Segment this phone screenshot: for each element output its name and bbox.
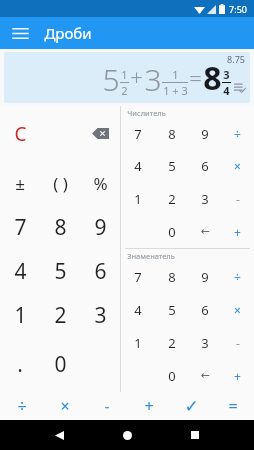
staticText: + — [130, 62, 143, 92]
button[interactable]: 6 — [80, 249, 120, 293]
staticText: 1 — [14, 301, 27, 330]
button[interactable]: 4 — [121, 293, 155, 326]
button[interactable]: Operator ÷ — [221, 261, 254, 293]
staticText: C — [14, 121, 27, 147]
staticText: ÷ — [17, 395, 27, 417]
staticText: 5 — [168, 157, 176, 175]
staticText: 1 — [134, 334, 142, 352]
staticText: 8 — [54, 213, 67, 242]
button[interactable]: ± — [0, 161, 40, 205]
button[interactable]: 8.75 — [4, 52, 250, 103]
button[interactable]: 3 — [80, 293, 120, 337]
button[interactable]: Backspace — [188, 359, 221, 392]
button[interactable]: 0 — [155, 215, 188, 248]
button[interactable]: Home — [116, 424, 138, 446]
button[interactable]: 9 — [80, 205, 120, 249]
button[interactable]: 1 — [121, 326, 155, 359]
staticText: × — [60, 395, 70, 417]
button[interactable]: 0 — [155, 359, 188, 392]
staticText: 3 — [144, 59, 162, 100]
button[interactable]: Open navigation menu — [8, 21, 32, 45]
button[interactable]: 3 — [188, 326, 221, 359]
button[interactable]: ( ) — [40, 161, 80, 205]
staticText: 8 — [203, 56, 222, 100]
button[interactable]: % — [80, 161, 120, 205]
button[interactable]: 4 — [121, 150, 155, 182]
button[interactable]: 1 — [0, 293, 40, 337]
staticText: 4 — [223, 83, 230, 98]
button[interactable]: 0 — [40, 337, 80, 392]
staticText: 9 — [94, 213, 107, 242]
staticText: % — [93, 172, 108, 195]
staticText: 4 — [14, 257, 27, 286]
staticText: - — [236, 335, 240, 351]
staticText: 8.75 — [227, 53, 245, 65]
button[interactable]: Recent apps — [184, 424, 206, 446]
staticText: 6 — [201, 301, 209, 319]
button[interactable]: 9 — [188, 118, 221, 150]
staticText: ± — [15, 172, 25, 195]
staticText: × — [234, 158, 241, 174]
staticText: + — [234, 368, 241, 384]
button[interactable]: Operator × — [221, 150, 254, 182]
button[interactable]: 5 — [40, 249, 80, 293]
button[interactable]: Operator - — [86, 392, 128, 420]
button[interactable]: 7 — [0, 205, 40, 249]
button[interactable]: Operator + — [128, 392, 170, 420]
staticText: ÷ — [234, 126, 241, 142]
button[interactable]: 8 — [40, 205, 80, 249]
staticText: - — [236, 191, 240, 207]
staticText: 1 — [121, 67, 128, 82]
staticText: + — [144, 395, 154, 417]
staticText: 9 — [201, 125, 209, 143]
staticText: 5 — [102, 59, 120, 100]
button[interactable]: Operator - — [221, 182, 254, 215]
staticText: 2 — [121, 83, 128, 98]
button[interactable]: Operator ÷ — [221, 118, 254, 150]
staticText: 5 — [168, 301, 176, 319]
button[interactable]: Operator + — [221, 215, 254, 248]
staticText: = — [228, 395, 238, 417]
button[interactable]: 2 — [155, 326, 188, 359]
button[interactable]: Operator × — [221, 293, 254, 326]
staticText: 0 — [168, 223, 176, 241]
button[interactable]: C — [0, 106, 40, 161]
staticText: 1 — [172, 67, 179, 82]
staticText: 3 — [223, 67, 230, 82]
button[interactable]: 7 — [121, 118, 155, 150]
staticText: - — [104, 395, 110, 417]
staticText: 0 — [168, 367, 176, 385]
button[interactable]: Operator ÷ — [0, 392, 43, 420]
button[interactable]: Operator ✓ — [170, 392, 212, 420]
button[interactable]: 4 — [0, 249, 40, 293]
button[interactable]: 2 — [40, 293, 80, 337]
button[interactable]: 5 — [155, 293, 188, 326]
staticText: 7 — [134, 268, 142, 286]
staticText: 1 + 3 — [163, 83, 188, 98]
button[interactable]: Operator = — [212, 392, 254, 420]
staticText: 7 — [134, 125, 142, 143]
button[interactable]: 6 — [188, 293, 221, 326]
button[interactable]: 9 — [188, 261, 221, 293]
button[interactable]: 7 — [121, 261, 155, 293]
staticText: ← — [200, 225, 210, 238]
button[interactable]: 8 — [155, 261, 188, 293]
button[interactable]: 2 — [155, 182, 188, 215]
button[interactable]: . — [0, 337, 40, 392]
button[interactable]: Operator + — [221, 359, 254, 392]
button[interactable]: 5 — [155, 150, 188, 182]
button[interactable]: Backspace — [188, 215, 221, 248]
button[interactable]: Back — [48, 424, 70, 446]
staticText: ← — [200, 369, 210, 382]
button[interactable]: Operator × — [43, 392, 86, 420]
staticText: ✓ — [184, 396, 199, 416]
button[interactable]: Backspace — [80, 106, 120, 161]
button[interactable]: 8 — [155, 118, 188, 150]
button[interactable]: Operator - — [221, 326, 254, 359]
staticText: ÷ — [234, 269, 241, 285]
button[interactable]: 1 — [121, 182, 155, 215]
button[interactable]: 6 — [188, 150, 221, 182]
button[interactable]: 3 — [188, 182, 221, 215]
staticText: 3 — [201, 190, 209, 208]
staticText: 4 — [134, 301, 142, 319]
